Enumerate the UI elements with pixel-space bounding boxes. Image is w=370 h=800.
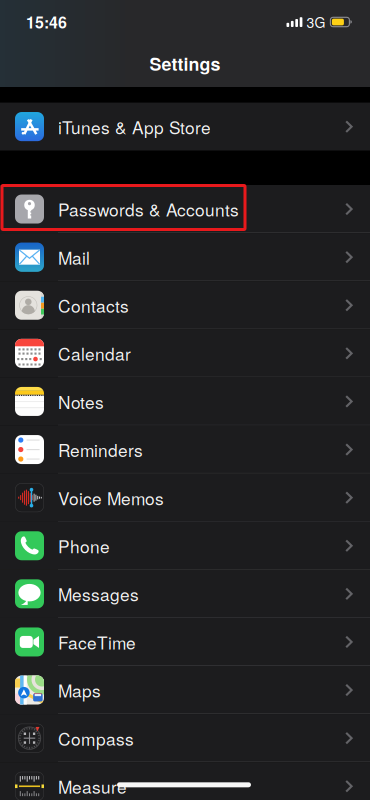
- button[interactable]: Voice Memos: [0, 474, 370, 522]
- staticText: Mail: [58, 245, 90, 269]
- button[interactable]: Passwords & Accounts: [0, 185, 370, 233]
- staticText: Notes: [58, 389, 104, 414]
- staticText: FaceTime: [58, 629, 136, 654]
- button[interactable]: Mail: [0, 233, 370, 281]
- staticText: Settings: [149, 51, 220, 76]
- staticText: Reminders: [58, 437, 143, 462]
- staticText: Measure: [58, 774, 127, 799]
- staticText: Passwords & Accounts: [58, 197, 239, 221]
- button[interactable]: Phone: [0, 522, 370, 570]
- button[interactable]: FaceTime: [0, 618, 370, 666]
- staticText: 15:46: [26, 10, 67, 33]
- staticText: 3G: [306, 12, 325, 32]
- staticText: Compass: [58, 726, 134, 750]
- staticText: Contacts: [58, 293, 129, 318]
- staticText: Phone: [58, 533, 110, 558]
- staticText: Voice Memos: [58, 485, 164, 510]
- button[interactable]: Contacts: [0, 281, 370, 329]
- button[interactable]: Measure: [0, 762, 370, 800]
- button[interactable]: Reminders: [0, 425, 370, 474]
- staticText: iTunes & App Store: [58, 114, 211, 139]
- button[interactable]: iTunes & App Store: [0, 103, 370, 151]
- button[interactable]: Compass: [0, 714, 370, 762]
- staticText: Calendar: [58, 341, 131, 366]
- button[interactable]: Notes: [0, 377, 370, 425]
- button[interactable]: Calendar: [0, 329, 370, 377]
- button[interactable]: Maps: [0, 666, 370, 714]
- staticText: Messages: [58, 581, 139, 606]
- staticText: Maps: [58, 678, 101, 702]
- button[interactable]: Messages: [0, 570, 370, 618]
